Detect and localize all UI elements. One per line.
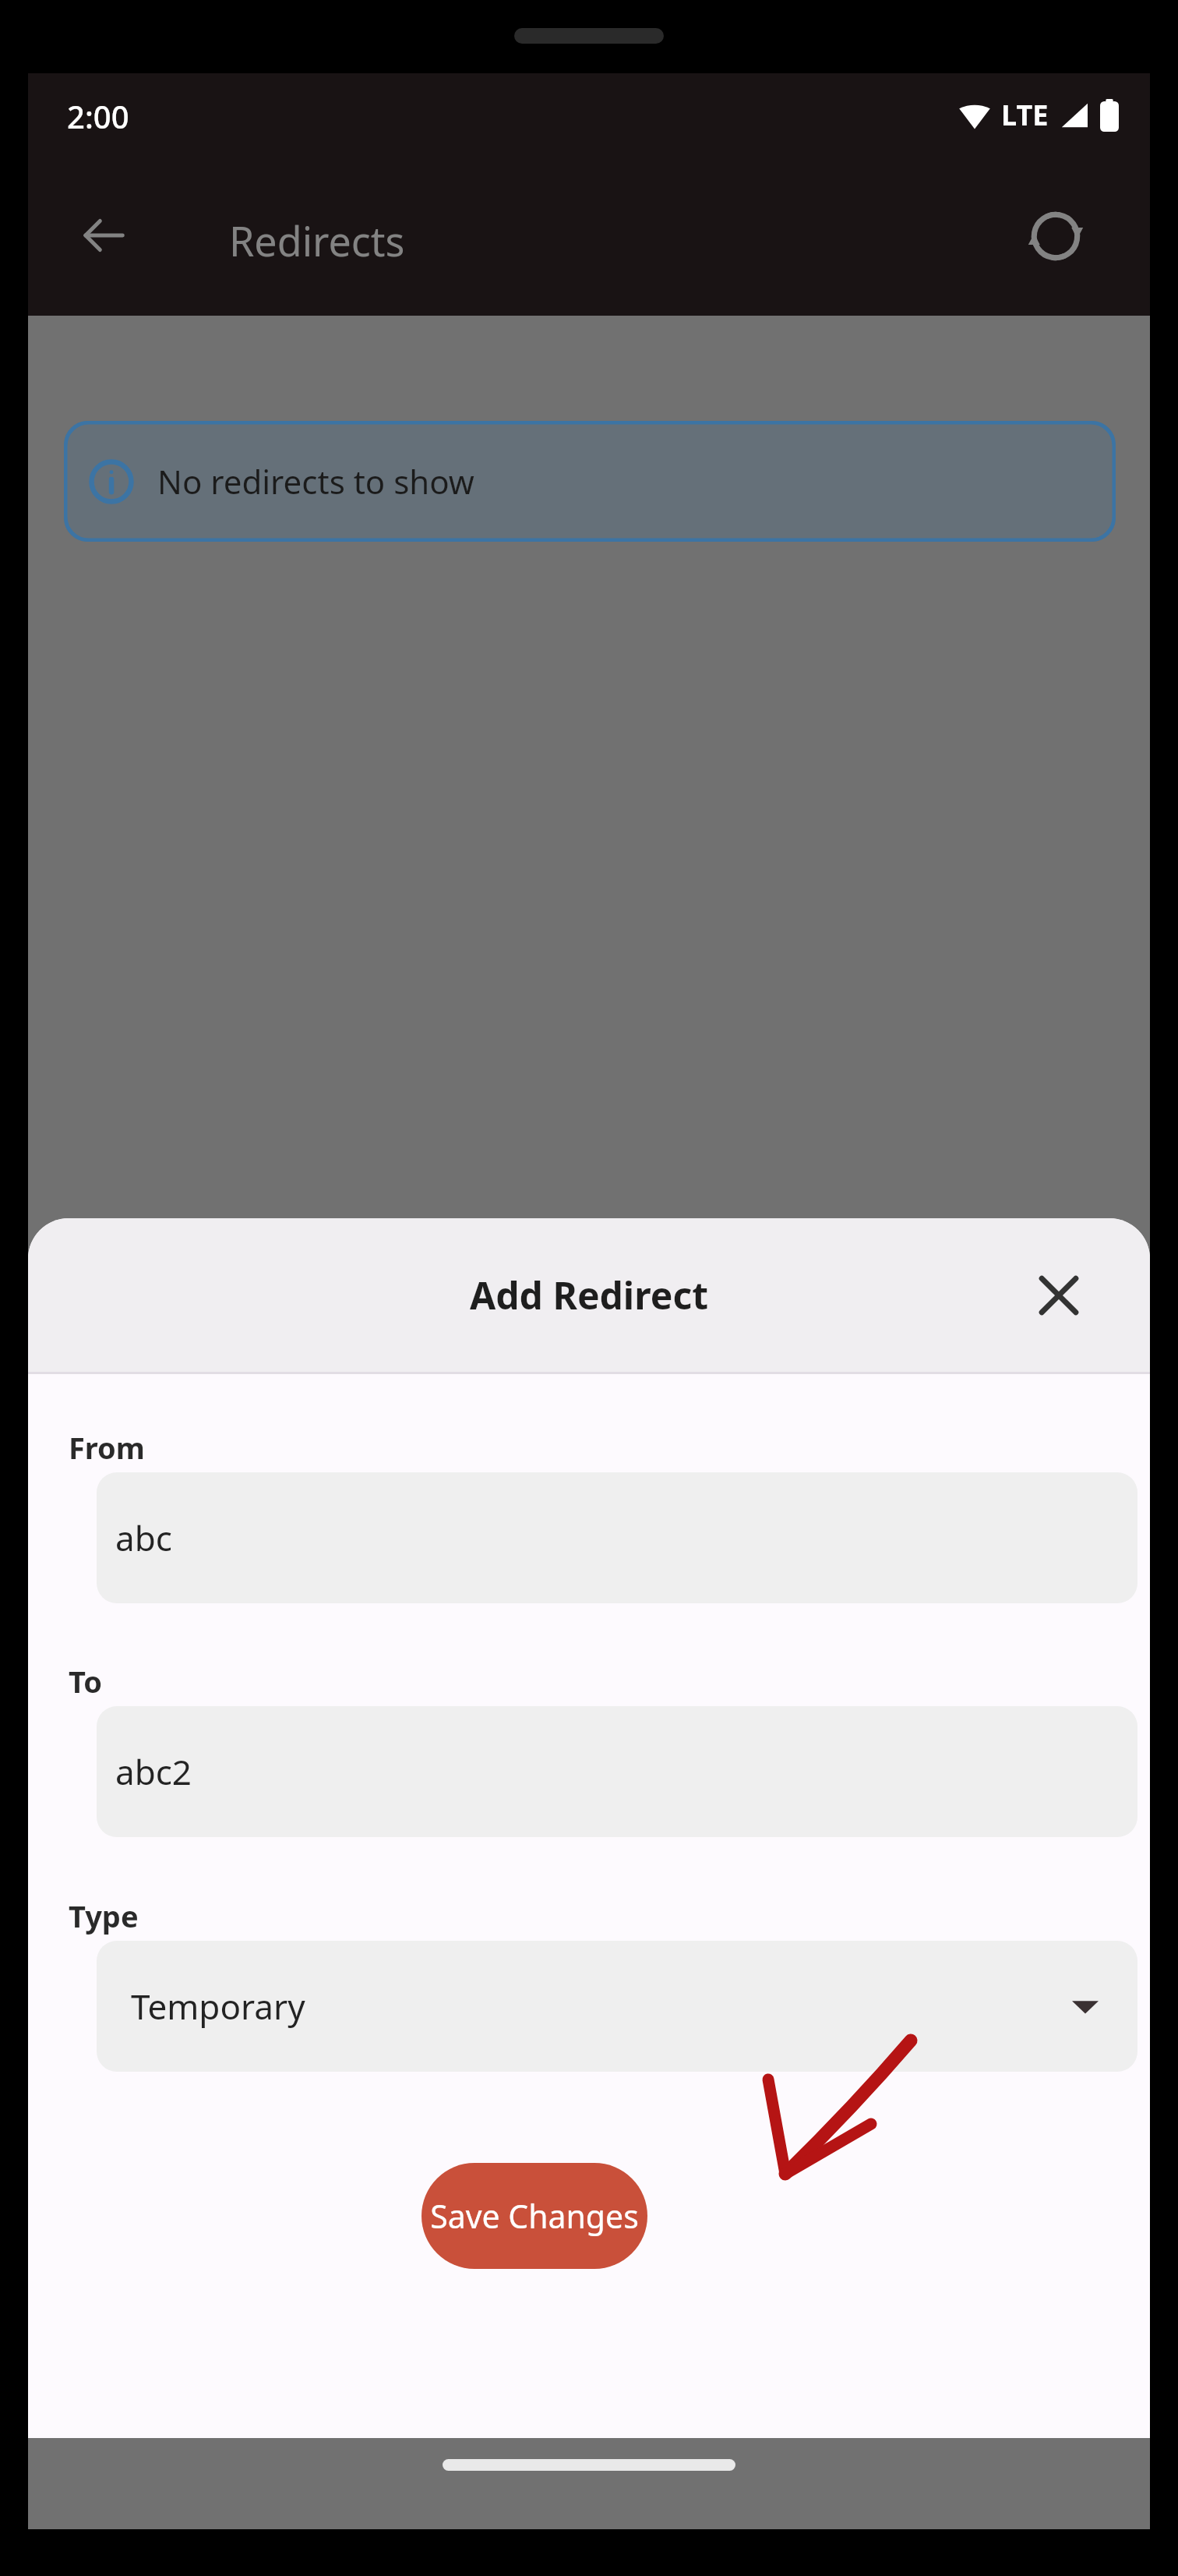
button[interactable]: No redirects to show bbox=[64, 421, 1116, 542]
button[interactable]: Save Changes bbox=[421, 2163, 647, 2269]
button[interactable]: abc2 bbox=[97, 1706, 1137, 1837]
staticText: Temporary bbox=[131, 1983, 305, 2030]
staticText: LTE bbox=[1001, 96, 1049, 134]
staticText: To bbox=[69, 1661, 103, 1701]
button[interactable]: Close bbox=[1023, 1260, 1095, 1331]
staticText: abc bbox=[115, 1514, 172, 1561]
staticText: 2:00 bbox=[67, 95, 129, 137]
staticText: Save Changes bbox=[430, 2194, 639, 2238]
button[interactable]: Refresh bbox=[1018, 199, 1093, 274]
staticText: Add Redirect bbox=[470, 1270, 708, 1320]
button[interactable]: Back bbox=[66, 198, 141, 273]
button[interactable]: abc bbox=[97, 1472, 1137, 1603]
button[interactable]: Temporary bbox=[97, 1941, 1137, 2072]
staticText: abc2 bbox=[115, 1748, 192, 1795]
staticText: No redirects to show bbox=[157, 459, 474, 504]
staticText: Redirects bbox=[229, 213, 405, 268]
staticText: Type bbox=[69, 1896, 139, 1936]
staticText: From bbox=[69, 1427, 145, 1468]
